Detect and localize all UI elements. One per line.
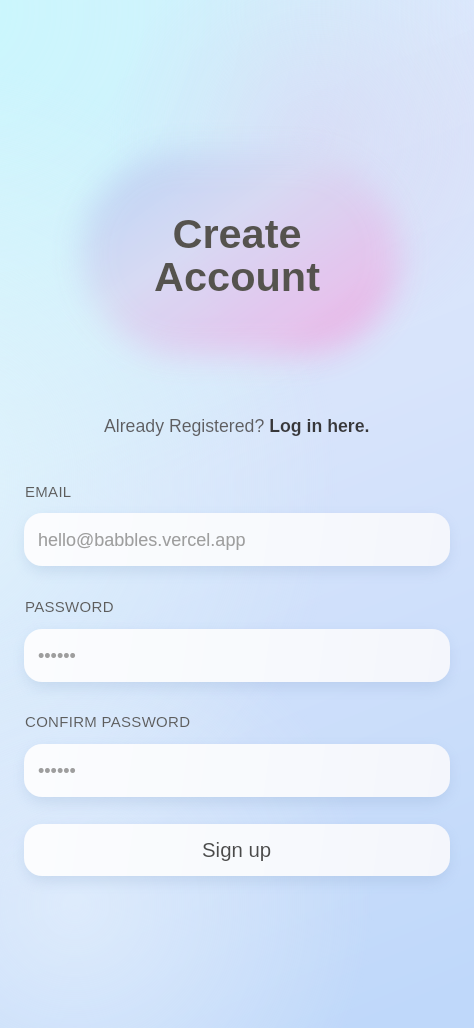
staticText: PASSWORD: [25, 598, 114, 615]
staticText: ••••••: [38, 646, 76, 666]
button[interactable]: ••••••: [24, 744, 450, 797]
button[interactable]: Sign up: [24, 824, 450, 876]
staticText: hello@babbles.vercel.app: [38, 530, 246, 550]
staticText: EMAIL: [25, 483, 72, 500]
staticText: Sign up: [202, 839, 272, 862]
staticText: CONFIRM PASSWORD: [25, 713, 191, 730]
button[interactable]: hello@babbles.vercel.app: [24, 513, 450, 566]
button[interactable]: Already Registered? Log in here.: [104, 416, 370, 436]
button[interactable]: ••••••: [24, 629, 450, 682]
staticText: Already Registered? Log in here.: [104, 416, 370, 436]
staticText: ••••••: [38, 761, 76, 781]
staticText: Create Account: [154, 210, 320, 300]
